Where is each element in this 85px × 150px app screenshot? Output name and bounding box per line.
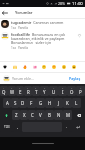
staticText: 1sa	[11, 46, 16, 50]
staticText: V	[39, 112, 42, 118]
button[interactable]: tugcademir Canımsın canımm	[0, 20, 85, 30]
button[interactable]: 5	[32, 86, 40, 96]
staticText: 28%	[58, 1, 66, 6]
staticText: Y	[43, 89, 46, 95]
button[interactable]: D	[19, 98, 27, 108]
button[interactable]: A	[3, 98, 11, 108]
button[interactable]: Emoji reaction	[31, 63, 39, 71]
staticText: Yanıtla	[18, 26, 28, 30]
staticText: .	[66, 124, 68, 130]
staticText: A	[6, 100, 9, 106]
staticText: 7	[53, 87, 55, 90]
button[interactable]: Emoji reaction	[11, 63, 19, 71]
button[interactable]: Shift	[0, 110, 12, 120]
staticText: Yorumlar	[15, 10, 33, 15]
staticText: 6	[44, 87, 46, 90]
staticText: R	[27, 89, 30, 95]
staticText: 9	[71, 87, 73, 90]
staticText: C	[31, 112, 34, 118]
staticText: J	[58, 100, 60, 106]
staticText: ?123	[4, 125, 10, 129]
staticText: Yorum ekle...	[12, 76, 34, 81]
button[interactable]: M	[63, 110, 72, 120]
staticText: 4	[27, 87, 29, 90]
staticText: F	[30, 100, 33, 106]
button[interactable]: Comma	[13, 122, 22, 132]
staticText: K	[66, 100, 69, 106]
button[interactable]: 4	[24, 86, 32, 96]
staticText: N	[57, 112, 61, 118]
staticText: E	[19, 89, 22, 95]
staticText: 11:00	[72, 1, 83, 7]
button[interactable]: Emoji reaction	[70, 63, 78, 71]
button[interactable]: F	[27, 98, 36, 108]
button[interactable]: Backspace	[72, 110, 85, 120]
staticText: P	[79, 89, 82, 95]
button[interactable]: footballlife Bonusunuzu en çok kazandıra…	[0, 32, 85, 50]
button[interactable]: Emoji reaction	[1, 63, 9, 71]
staticText: tugcademir Canımsın canımm	[11, 20, 64, 25]
staticText: L	[75, 100, 78, 106]
button[interactable]: Paylaş	[68, 74, 82, 83]
button[interactable]: 2	[8, 86, 16, 96]
button[interactable]: Back	[0, 7, 10, 18]
button[interactable]: J	[54, 98, 63, 108]
staticText: 1	[3, 87, 5, 90]
staticText: 8	[62, 87, 64, 90]
staticText: I	[62, 89, 64, 95]
staticText: 0	[80, 87, 82, 90]
staticText: Q	[2, 89, 6, 95]
staticText: footballlife Bonusunuzu en çok kazandıra…	[11, 32, 76, 45]
button[interactable]: Like	[76, 32, 83, 41]
button[interactable]: Emoji reaction	[40, 63, 48, 71]
staticText: B	[48, 112, 51, 118]
staticText: 5	[35, 87, 37, 90]
button[interactable]: H	[45, 98, 54, 108]
button[interactable]: 8	[58, 86, 67, 96]
button[interactable]: N	[54, 110, 63, 120]
staticText: M	[66, 112, 70, 118]
button[interactable]: Period	[62, 122, 71, 132]
staticText: 1sa	[11, 26, 16, 30]
button[interactable]: 1	[0, 86, 8, 96]
button[interactable]: 0	[76, 86, 85, 96]
button[interactable]: 7	[49, 86, 58, 96]
button[interactable]: Symbols	[0, 122, 13, 132]
staticText: ,	[17, 124, 19, 130]
button[interactable]: 6	[40, 86, 49, 96]
staticText: U	[52, 89, 56, 95]
button[interactable]: 3	[16, 86, 24, 96]
button[interactable]: S	[11, 98, 19, 108]
staticText: S	[14, 100, 17, 106]
button[interactable]: X	[20, 110, 28, 120]
button[interactable]: 9	[67, 86, 76, 96]
staticText: D	[21, 100, 25, 106]
staticText: T	[35, 89, 38, 95]
button[interactable]: V	[36, 110, 45, 120]
staticText: 3	[19, 87, 21, 90]
staticText: Yanıtla	[18, 46, 28, 50]
button[interactable]: Emoji reaction	[50, 63, 58, 71]
button[interactable]: Enter	[71, 122, 85, 132]
button[interactable]: L	[72, 98, 81, 108]
staticText: W	[10, 89, 15, 95]
staticText: H	[48, 100, 52, 106]
staticText: Paylaş	[69, 76, 81, 81]
button[interactable]: Z	[12, 110, 20, 120]
button[interactable]: B	[45, 110, 54, 120]
button[interactable]: Emoji reaction	[21, 63, 29, 71]
button[interactable]: Emoji reaction	[60, 63, 68, 71]
staticText: X	[23, 112, 26, 118]
staticText: O	[70, 89, 74, 95]
staticText: Z	[15, 112, 18, 118]
button[interactable]: C	[28, 110, 36, 120]
button[interactable]: K	[63, 98, 72, 108]
staticText: G	[39, 100, 43, 106]
staticText: 2	[11, 87, 13, 90]
button[interactable]: G	[36, 98, 45, 108]
